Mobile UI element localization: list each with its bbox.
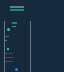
button[interactable]: Send <box>15 68 18 71</box>
